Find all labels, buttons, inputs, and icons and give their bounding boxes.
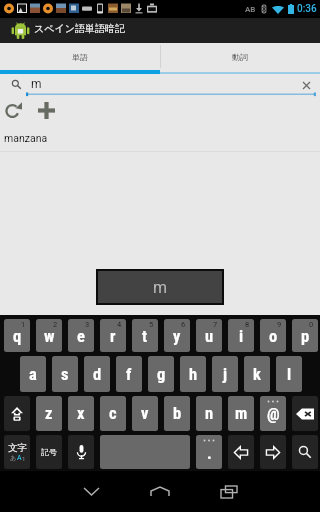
staticText: 3	[85, 320, 90, 329]
staticText: r	[110, 327, 116, 346]
button[interactable]: Back	[71, 471, 111, 512]
button[interactable]: v	[132, 396, 158, 431]
button[interactable]: j	[212, 356, 238, 392]
staticText: s	[61, 365, 69, 384]
staticText: @	[267, 405, 280, 424]
staticText: スペイン語単語暗記	[34, 22, 125, 35]
button[interactable]: z	[36, 396, 62, 431]
button[interactable]: 2	[36, 319, 62, 352]
staticText: 4	[117, 320, 122, 329]
staticText: m	[235, 404, 248, 423]
button[interactable]: 6	[164, 319, 190, 352]
button[interactable]: 4	[100, 319, 126, 352]
button[interactable]: @	[260, 396, 286, 431]
button[interactable]: 5	[132, 319, 158, 352]
staticText: 6	[181, 320, 186, 329]
button[interactable]: m	[0, 72, 320, 96]
staticText: p	[301, 327, 310, 346]
staticText: u	[205, 327, 214, 346]
button[interactable]: Home	[140, 471, 180, 512]
button[interactable]: manzana	[0, 124, 320, 151]
button[interactable]: 8	[228, 319, 254, 352]
button[interactable]: b	[164, 396, 190, 431]
staticText: h	[189, 365, 198, 384]
staticText: n	[205, 404, 214, 423]
staticText: f	[126, 365, 132, 384]
button[interactable]: m	[228, 396, 254, 431]
button[interactable]: Refresh	[2, 98, 26, 122]
staticText: 1	[22, 455, 26, 462]
staticText: e	[77, 327, 85, 346]
button[interactable]: Space	[4, 435, 30, 469]
staticText: m	[31, 77, 42, 91]
button[interactable]: Add	[34, 99, 58, 123]
staticText: manzana	[4, 132, 48, 144]
button[interactable]: d	[84, 356, 110, 392]
staticText: A	[17, 454, 22, 462]
button[interactable]: Shift	[4, 396, 30, 431]
staticText: 文字	[8, 442, 27, 454]
button[interactable]: s	[52, 356, 78, 392]
button[interactable]: 9	[260, 319, 286, 352]
staticText: k	[253, 365, 261, 384]
button[interactable]: 動詞	[160, 43, 320, 74]
button[interactable]: 0	[292, 319, 318, 352]
staticText: 0	[309, 320, 314, 329]
staticText: j	[223, 365, 228, 384]
staticText: 7	[213, 320, 218, 329]
staticText: 記号	[41, 447, 57, 457]
button[interactable]: Move right	[260, 435, 286, 469]
button[interactable]: 単語	[0, 43, 160, 74]
button[interactable]: x	[68, 396, 94, 431]
button[interactable]: Recents	[209, 471, 249, 512]
staticText: あ	[10, 454, 17, 462]
button[interactable]: 記号	[36, 435, 62, 469]
staticText: 8	[245, 320, 250, 329]
staticText: 2	[53, 320, 58, 329]
staticText: y	[173, 327, 181, 346]
button[interactable]: 3	[68, 319, 94, 352]
button[interactable]: g	[148, 356, 174, 392]
staticText: 9	[277, 320, 282, 329]
staticText: q	[13, 327, 22, 346]
staticText: 単語	[72, 52, 88, 62]
staticText: a	[29, 365, 37, 384]
button[interactable]: Backspace	[292, 396, 318, 431]
staticText: AB	[245, 5, 256, 14]
staticText: i	[239, 327, 244, 346]
button[interactable]: Move left	[228, 435, 254, 469]
staticText: 5	[149, 320, 154, 329]
staticText: d	[93, 365, 102, 384]
staticText: g	[157, 365, 166, 384]
staticText: m	[153, 278, 168, 297]
staticText: t	[142, 327, 148, 346]
button[interactable]: c	[100, 396, 126, 431]
staticText: .	[207, 444, 212, 463]
button[interactable]: 7	[196, 319, 222, 352]
button[interactable]: 1	[4, 319, 30, 352]
staticText: 1	[21, 320, 26, 329]
button[interactable]: Voice input	[68, 435, 94, 469]
staticText: z	[45, 404, 53, 423]
button[interactable]: a	[20, 356, 46, 392]
button[interactable]: l	[276, 356, 302, 392]
button[interactable]: Search	[292, 435, 318, 469]
staticText: 動詞	[232, 52, 248, 62]
button[interactable]: h	[180, 356, 206, 392]
staticText: l	[287, 365, 292, 384]
button[interactable]: .	[196, 435, 222, 469]
staticText: c	[109, 404, 117, 423]
button[interactable]: n	[196, 396, 222, 431]
staticText: b	[173, 404, 182, 423]
staticText: w	[44, 327, 55, 346]
staticText: x	[77, 404, 85, 423]
staticText: v	[141, 404, 149, 423]
button[interactable]: f	[116, 356, 142, 392]
staticText: 0:36	[297, 3, 317, 15]
button[interactable]: k	[244, 356, 270, 392]
staticText: o	[269, 327, 278, 346]
